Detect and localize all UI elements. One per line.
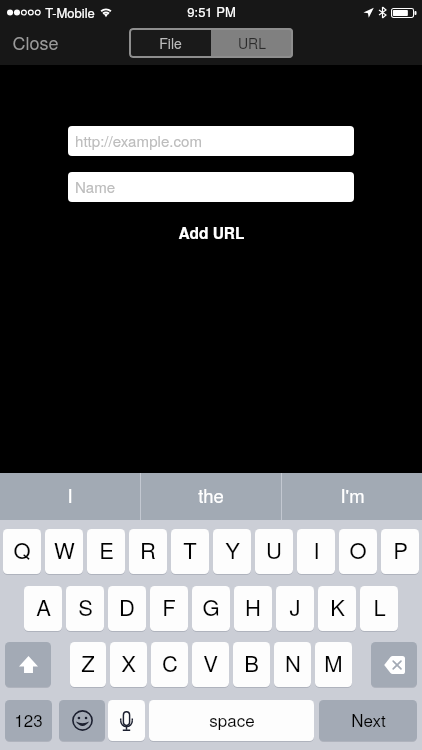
staticText: U	[266, 534, 282, 566]
staticText: F	[162, 591, 176, 623]
button[interactable]: Add URL	[166, 217, 257, 249]
staticText: space	[209, 707, 255, 731]
button[interactable]: Shift	[5, 642, 51, 687]
staticText: O	[349, 534, 367, 566]
button[interactable]: URL	[211, 28, 293, 58]
button[interactable]: space	[149, 700, 314, 741]
staticText: G	[202, 591, 220, 623]
staticText: H	[245, 591, 261, 623]
button[interactable]: Emoji	[59, 700, 105, 741]
staticText: I'm	[340, 482, 365, 508]
staticText: Y	[225, 534, 240, 566]
button[interactable]: Dictation	[108, 700, 145, 741]
button[interactable]: the	[141, 473, 281, 520]
staticText: T	[183, 534, 197, 566]
staticText: E	[99, 534, 114, 566]
button[interactable]: Next	[319, 700, 417, 741]
button[interactable]: N	[274, 642, 311, 687]
staticText: W	[54, 534, 75, 566]
staticText: I	[313, 534, 320, 566]
button[interactable]: Name	[68, 172, 354, 202]
button[interactable]: X	[110, 642, 147, 687]
staticText: P	[393, 534, 408, 566]
button[interactable]: Z	[70, 642, 106, 687]
button[interactable]: O	[339, 529, 377, 574]
button[interactable]: I'm	[282, 473, 422, 520]
button[interactable]: K	[318, 586, 356, 631]
button[interactable]: 123	[5, 700, 52, 741]
button[interactable]: H	[234, 586, 272, 631]
staticText: V	[203, 647, 218, 679]
staticText: the	[198, 482, 224, 508]
button[interactable]: Y	[213, 529, 251, 574]
button[interactable]: A	[24, 586, 62, 631]
staticText: D	[119, 591, 135, 623]
staticText: I	[67, 482, 73, 508]
button[interactable]: I	[297, 529, 335, 574]
staticText: A	[36, 591, 51, 623]
staticText: N	[285, 647, 301, 679]
button[interactable]: J	[276, 586, 314, 631]
button[interactable]: T	[171, 529, 209, 574]
button[interactable]: U	[255, 529, 293, 574]
button[interactable]: Close	[0, 25, 71, 59]
staticText: File	[159, 33, 182, 53]
button[interactable]: I	[0, 473, 140, 520]
staticText: M	[324, 647, 343, 679]
button[interactable]: File	[129, 28, 211, 58]
staticText: Add URL	[178, 222, 245, 244]
staticText: Name	[75, 176, 116, 198]
button[interactable]: G	[192, 586, 230, 631]
button[interactable]: Backspace	[371, 642, 417, 687]
button[interactable]: C	[151, 642, 188, 687]
button[interactable]: P	[381, 529, 419, 574]
button[interactable]: Q	[3, 529, 41, 574]
staticText: B	[244, 647, 259, 679]
button[interactable]: L	[360, 586, 398, 631]
button[interactable]: V	[192, 642, 229, 687]
staticText: Next	[351, 707, 386, 731]
staticText: L	[373, 591, 386, 623]
staticText: http://example.com	[75, 130, 202, 152]
button[interactable]: R	[129, 529, 167, 574]
button[interactable]: F	[150, 586, 188, 631]
button[interactable]: S	[66, 586, 104, 631]
staticText: T-Mobile	[45, 3, 95, 22]
button[interactable]: M	[315, 642, 352, 687]
staticText: K	[330, 591, 345, 623]
button[interactable]: http://example.com	[68, 126, 354, 156]
staticText: 9:51 PM	[187, 2, 236, 21]
staticText: URL	[238, 33, 266, 53]
button[interactable]: B	[233, 642, 270, 687]
staticText: Q	[13, 534, 31, 566]
staticText: J	[289, 591, 301, 623]
button[interactable]: W	[45, 529, 83, 574]
staticText: C	[162, 647, 178, 679]
staticText: S	[78, 591, 93, 623]
staticText: Z	[81, 647, 95, 679]
staticText: Close	[12, 29, 59, 55]
staticText: R	[140, 534, 156, 566]
button[interactable]: D	[108, 586, 146, 631]
staticText: X	[121, 647, 136, 679]
staticText: 123	[14, 707, 43, 731]
button[interactable]: E	[87, 529, 125, 574]
